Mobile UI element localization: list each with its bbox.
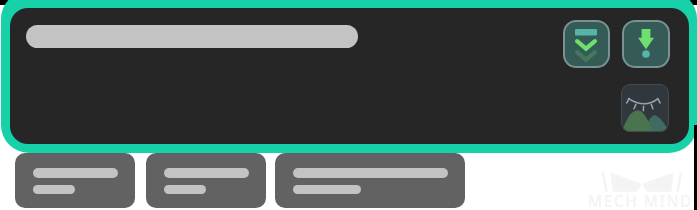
button[interactable]: Loading item [146, 153, 266, 208]
button[interactable]: Loading item [275, 153, 465, 208]
button[interactable]: Loading item [15, 153, 135, 208]
staticText: MECH MIND [588, 190, 693, 210]
button[interactable]: Search [26, 25, 358, 48]
button[interactable]: Download [622, 20, 670, 68]
button[interactable]: Collapse all [563, 20, 610, 68]
button[interactable]: Image preview [621, 84, 669, 132]
